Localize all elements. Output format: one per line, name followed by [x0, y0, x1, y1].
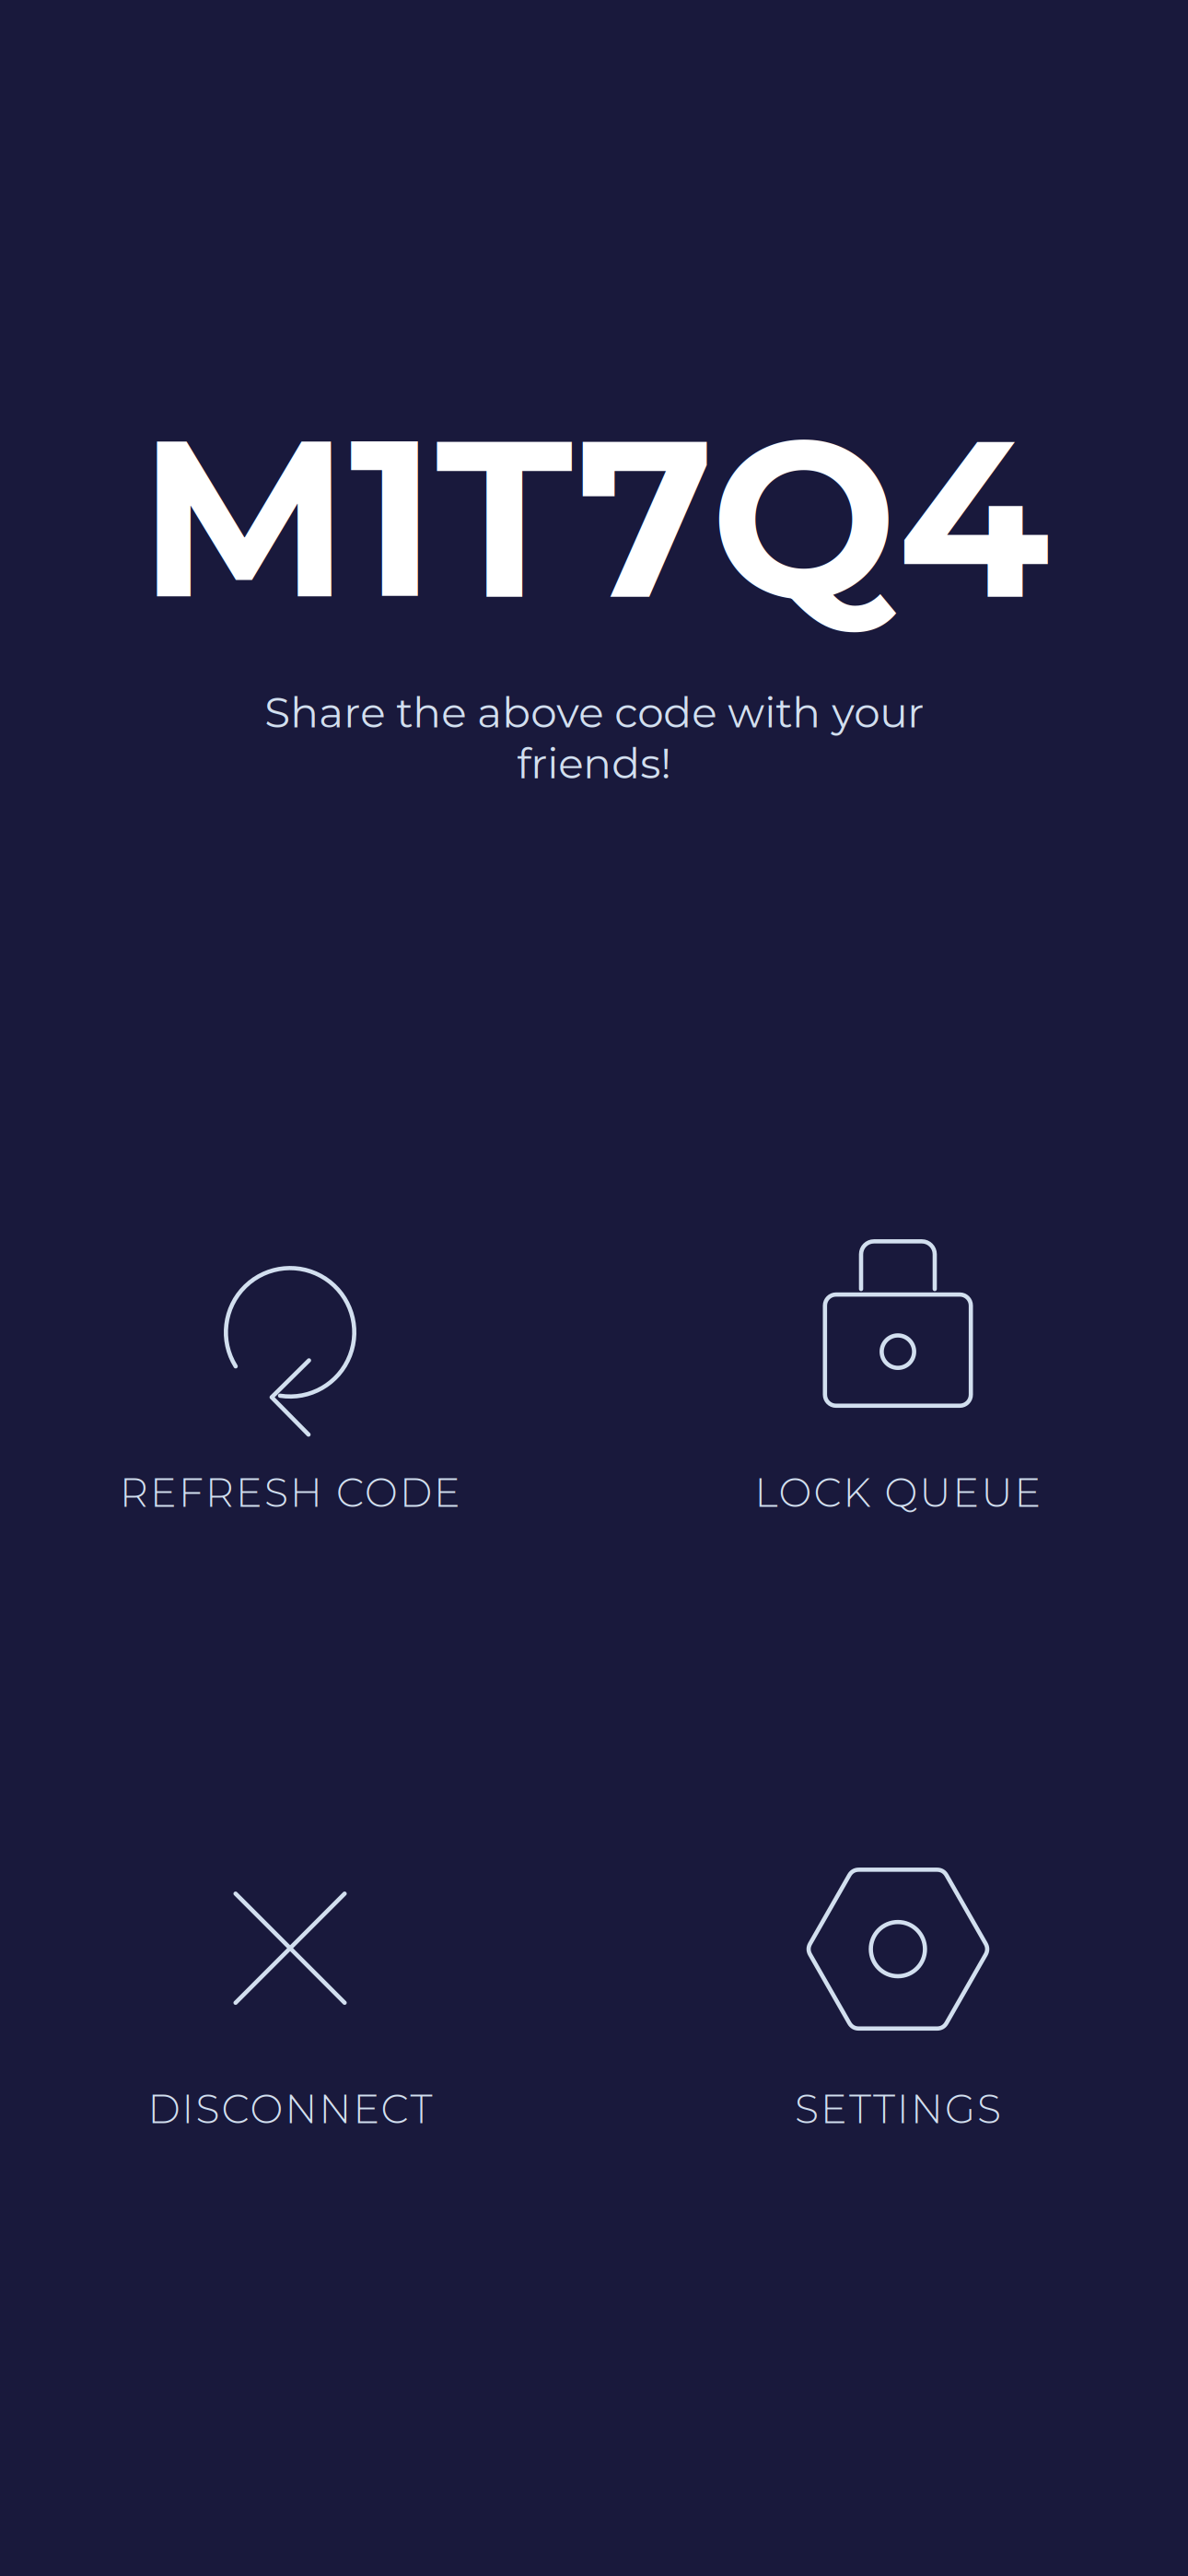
staticText: DISCONNECT: [148, 2085, 432, 2133]
button[interactable]: REFRESH CODE: [32, 1236, 548, 1522]
staticText: LOCK QUEUE: [755, 1469, 1041, 1517]
button[interactable]: DISCONNECT: [32, 1867, 548, 2152]
staticText: M1T7Q4: [139, 382, 1049, 652]
staticText: REFRESH CODE: [120, 1469, 460, 1517]
staticText: SETTINGS: [795, 2085, 1001, 2133]
button[interactable]: LOCK QUEUE: [640, 1236, 1156, 1522]
staticText: Share the above code with your friends!: [264, 687, 924, 789]
button[interactable]: SETTINGS: [640, 1867, 1156, 2152]
